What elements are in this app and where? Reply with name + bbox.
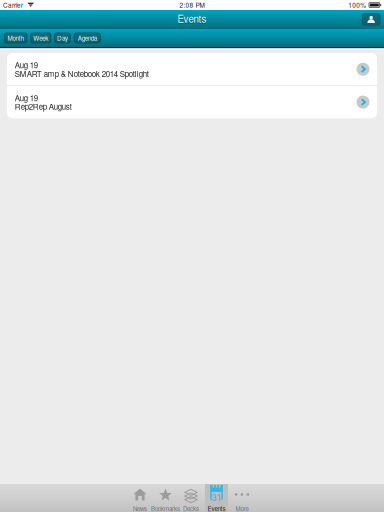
button[interactable]: News <box>128 484 151 512</box>
staticText: Events <box>177 13 206 27</box>
staticText: Week <box>33 33 48 42</box>
button[interactable]: Bookmarks <box>154 484 177 512</box>
staticText: Events <box>177 12 206 25</box>
staticText: Carrier <box>3 0 23 10</box>
button[interactable]: Aug 19 <box>7 53 377 85</box>
staticText: 31 <box>211 491 221 504</box>
button[interactable]: Aug 19 <box>7 86 377 118</box>
staticText: 2:08 PM <box>179 0 204 10</box>
button[interactable]: Agenda <box>74 32 101 43</box>
staticText: Rep2Rep August <box>15 101 72 112</box>
button[interactable]: Week <box>30 32 51 43</box>
staticText: SMART amp & Notebook 2014 Spotlight <box>15 68 149 79</box>
staticText: Bookmarks <box>151 504 180 512</box>
staticText: Aug 19 <box>15 92 38 103</box>
staticText: Events <box>207 504 225 512</box>
button[interactable]: Month <box>4 32 27 43</box>
staticText: More <box>235 504 248 512</box>
staticText: Day <box>57 33 68 42</box>
staticText: News <box>133 504 147 512</box>
staticText: Decks <box>183 504 199 512</box>
button[interactable]: Contacts <box>362 13 380 25</box>
staticText: Month <box>8 33 24 42</box>
staticText: 100% <box>348 0 366 10</box>
button[interactable]: Decks <box>179 484 202 512</box>
button[interactable]: 31 <box>205 484 228 512</box>
button[interactable]: Day <box>54 32 71 43</box>
button[interactable]: More <box>230 484 253 512</box>
staticText: Aug 19 <box>15 59 38 70</box>
staticText: Agenda <box>78 33 97 42</box>
